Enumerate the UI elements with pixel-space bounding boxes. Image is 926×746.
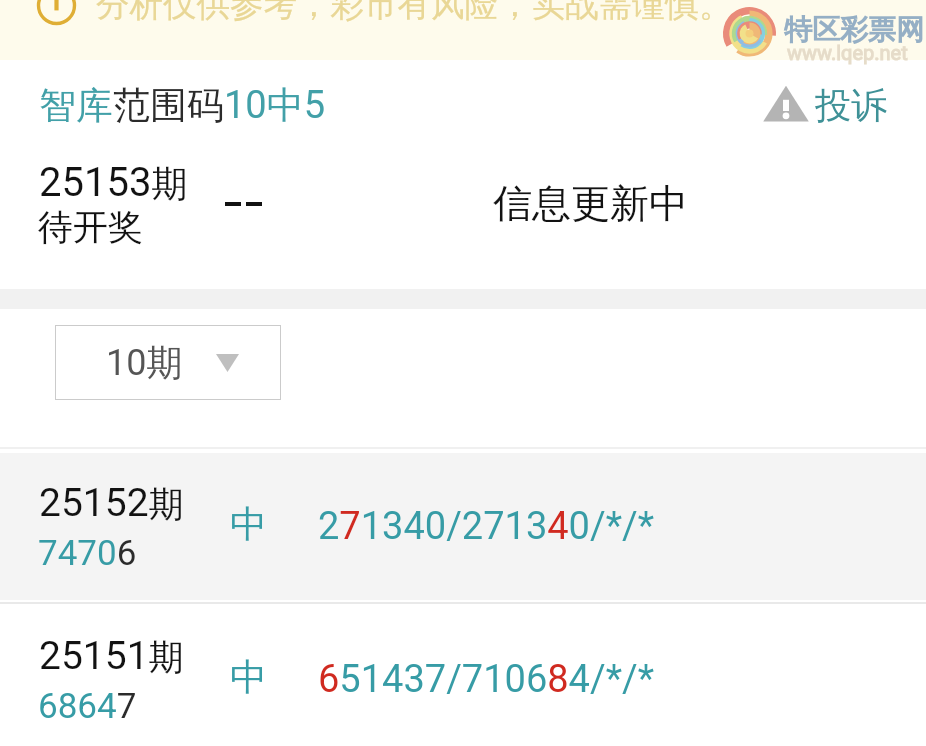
staticText: www.lqep.net [787, 41, 908, 64]
staticText: 中 [230, 501, 267, 548]
staticText: 智库范围码10中5 [39, 82, 326, 126]
button[interactable]: 智库范围码10中5 [39, 82, 339, 126]
other: Information [36, 0, 77, 26]
staticText: 10期 [106, 340, 183, 385]
staticText: 25152期 [39, 480, 184, 527]
staticText: 271340/271340/*/* [318, 504, 655, 549]
staticText: 74706 [38, 533, 137, 574]
staticText: 68647 [38, 686, 137, 727]
button[interactable]: Information [0, 0, 926, 60]
staticText: 651437/710684/*/* [318, 657, 655, 702]
button[interactable]: 10期 [55, 325, 281, 400]
staticText: 投诉 [815, 83, 887, 128]
staticText: 25151期 [39, 633, 184, 680]
staticText: 25153期 [39, 159, 188, 207]
staticText: 特区彩票网 [784, 12, 924, 47]
staticText: 待开奖 [38, 205, 143, 249]
button[interactable]: 25152期 [0, 449, 926, 601]
button[interactable]: 25151期 [0, 602, 926, 746]
staticText: 分析仅供参考，彩市有风险，实战需谨慎。 [96, 0, 733, 26]
button[interactable]: 投诉 [755, 74, 895, 130]
staticText: 信息更新中 [493, 179, 688, 228]
staticText: 中 [230, 654, 267, 701]
